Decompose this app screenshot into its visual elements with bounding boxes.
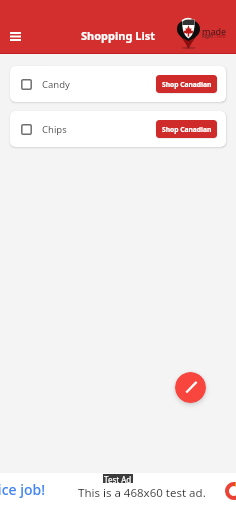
staticText: Shopping List bbox=[81, 28, 155, 43]
button[interactable]: Open navigation menu bbox=[3, 23, 27, 47]
button[interactable]: Shop Canadian bbox=[156, 75, 217, 93]
staticText: Chips bbox=[42, 123, 67, 136]
staticText: Shop Canadian bbox=[162, 80, 212, 89]
staticText: Candy bbox=[42, 78, 70, 91]
staticText: made bbox=[202, 25, 227, 37]
button[interactable]: Made Right Here bbox=[177, 16, 233, 50]
staticText: Right bbox=[202, 33, 214, 39]
staticText: Here bbox=[214, 33, 226, 39]
button[interactable]: Candy bbox=[10, 66, 226, 102]
staticText: Shop Canadian bbox=[162, 125, 212, 134]
staticText: Nice job! bbox=[0, 480, 46, 499]
staticText: Test Ad bbox=[104, 474, 132, 483]
button[interactable]: Chips bbox=[10, 111, 226, 147]
staticText: This is a 468x60 test ad. bbox=[78, 485, 206, 501]
button[interactable]: Shop Canadian bbox=[156, 120, 217, 138]
button[interactable]: Edit list bbox=[175, 372, 206, 403]
